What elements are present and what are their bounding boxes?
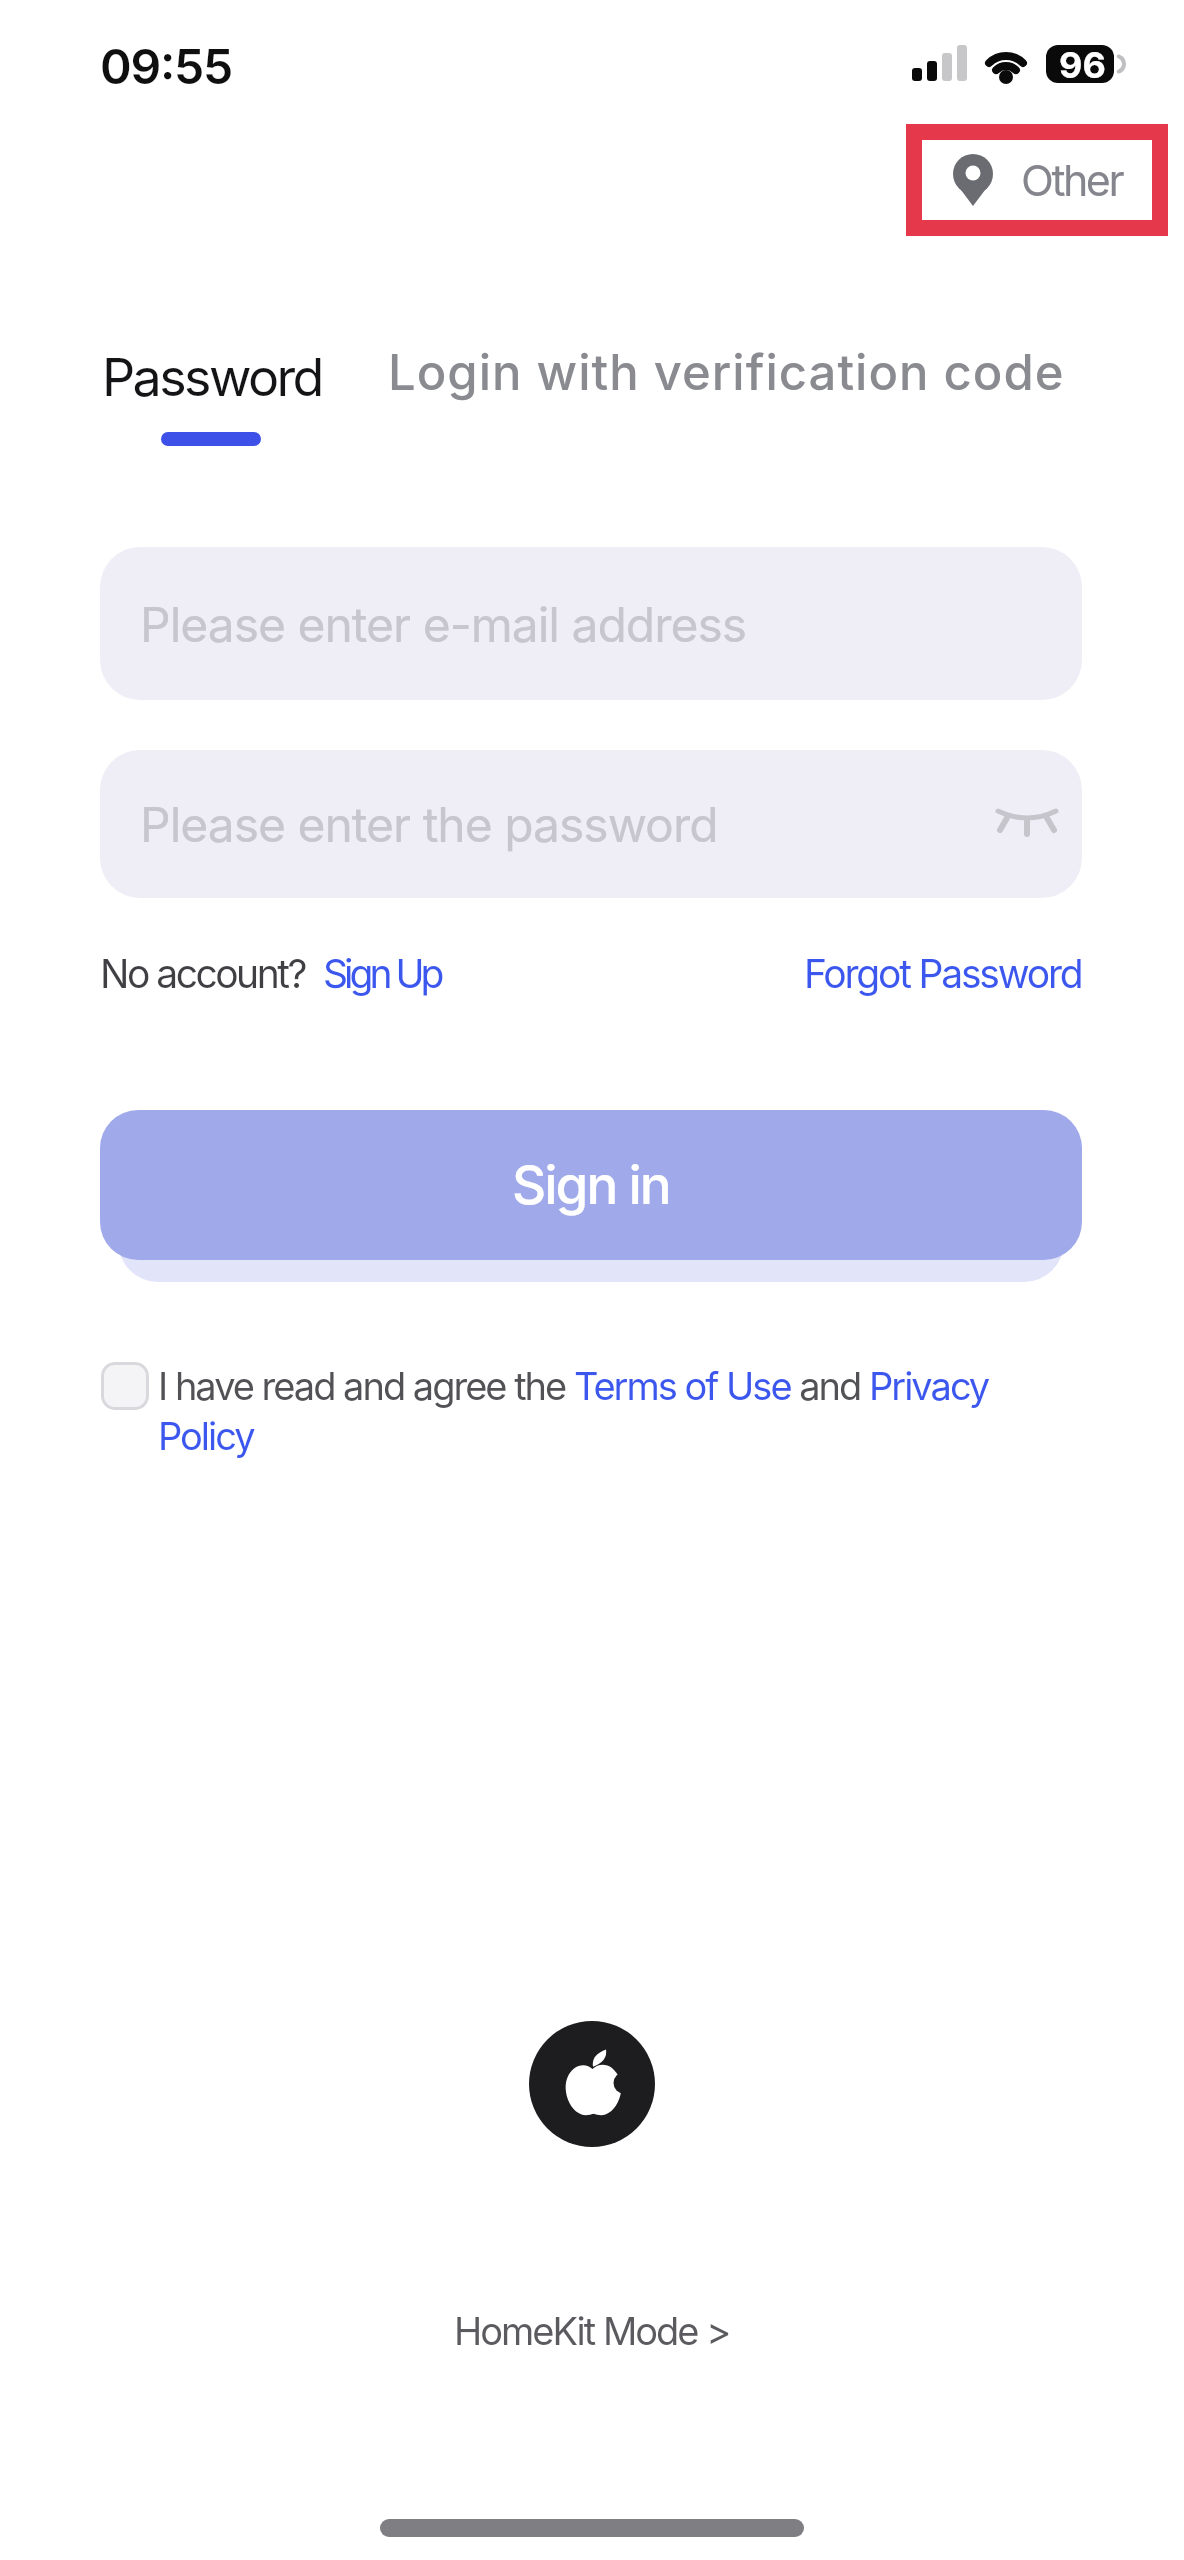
button[interactable]: Sign Up (323, 950, 441, 997)
staticText: No account? (100, 950, 305, 997)
button[interactable] (529, 2021, 655, 2147)
button[interactable]: Other (906, 124, 1168, 236)
staticText: Please enter the password (140, 795, 718, 853)
staticText: Login with verification code (388, 343, 1065, 402)
staticText: Password (102, 346, 322, 409)
staticText: 96 (1059, 43, 1106, 87)
button[interactable] (101, 1362, 149, 1410)
staticText: Sign in (512, 1153, 670, 1217)
staticText: Other (1021, 154, 1123, 206)
staticText: Please enter e-mail address (140, 595, 747, 653)
button[interactable]: Sign in (100, 1110, 1082, 1260)
staticText: I have read and agree the Terms of Use a… (158, 1363, 989, 1409)
button[interactable]: Please enter the password (100, 750, 1082, 898)
button[interactable]: Login with verification code (388, 343, 1065, 402)
button[interactable]: Password (102, 346, 322, 409)
button[interactable]: HomeKit Mode > (454, 2308, 730, 2354)
staticText: Policy (158, 1413, 254, 1459)
button[interactable]: Please enter e-mail address (100, 547, 1082, 700)
staticText: Sign Up (323, 950, 441, 997)
staticText: Forgot Password (804, 950, 1082, 997)
staticText: HomeKit Mode > (454, 2308, 730, 2354)
button[interactable]: Policy (158, 1413, 254, 1459)
button[interactable]: Forgot Password (804, 950, 1082, 997)
staticText: 09:55 (100, 37, 233, 95)
